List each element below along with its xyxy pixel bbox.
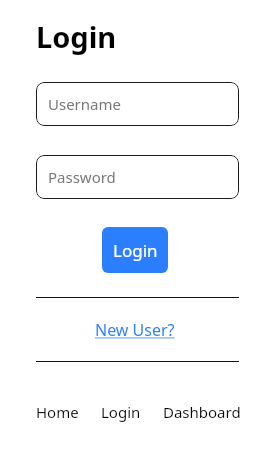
button[interactable]: Username — [36, 82, 239, 126]
button[interactable]: Home — [36, 402, 79, 422]
button[interactable]: Password — [36, 155, 239, 199]
staticText: Username — [48, 94, 121, 114]
button[interactable]: Dashboard — [163, 402, 241, 422]
staticText: Home — [36, 402, 79, 422]
button[interactable]: Login — [101, 402, 141, 422]
staticText: Password — [48, 167, 116, 187]
staticText: Dashboard — [163, 402, 241, 422]
staticText: Login — [101, 402, 141, 422]
staticText: New User? — [95, 319, 175, 341]
staticText: Login — [36, 17, 117, 56]
button[interactable]: Login — [102, 227, 168, 273]
button[interactable]: New User? — [91, 315, 179, 345]
staticText: Login — [113, 239, 158, 262]
